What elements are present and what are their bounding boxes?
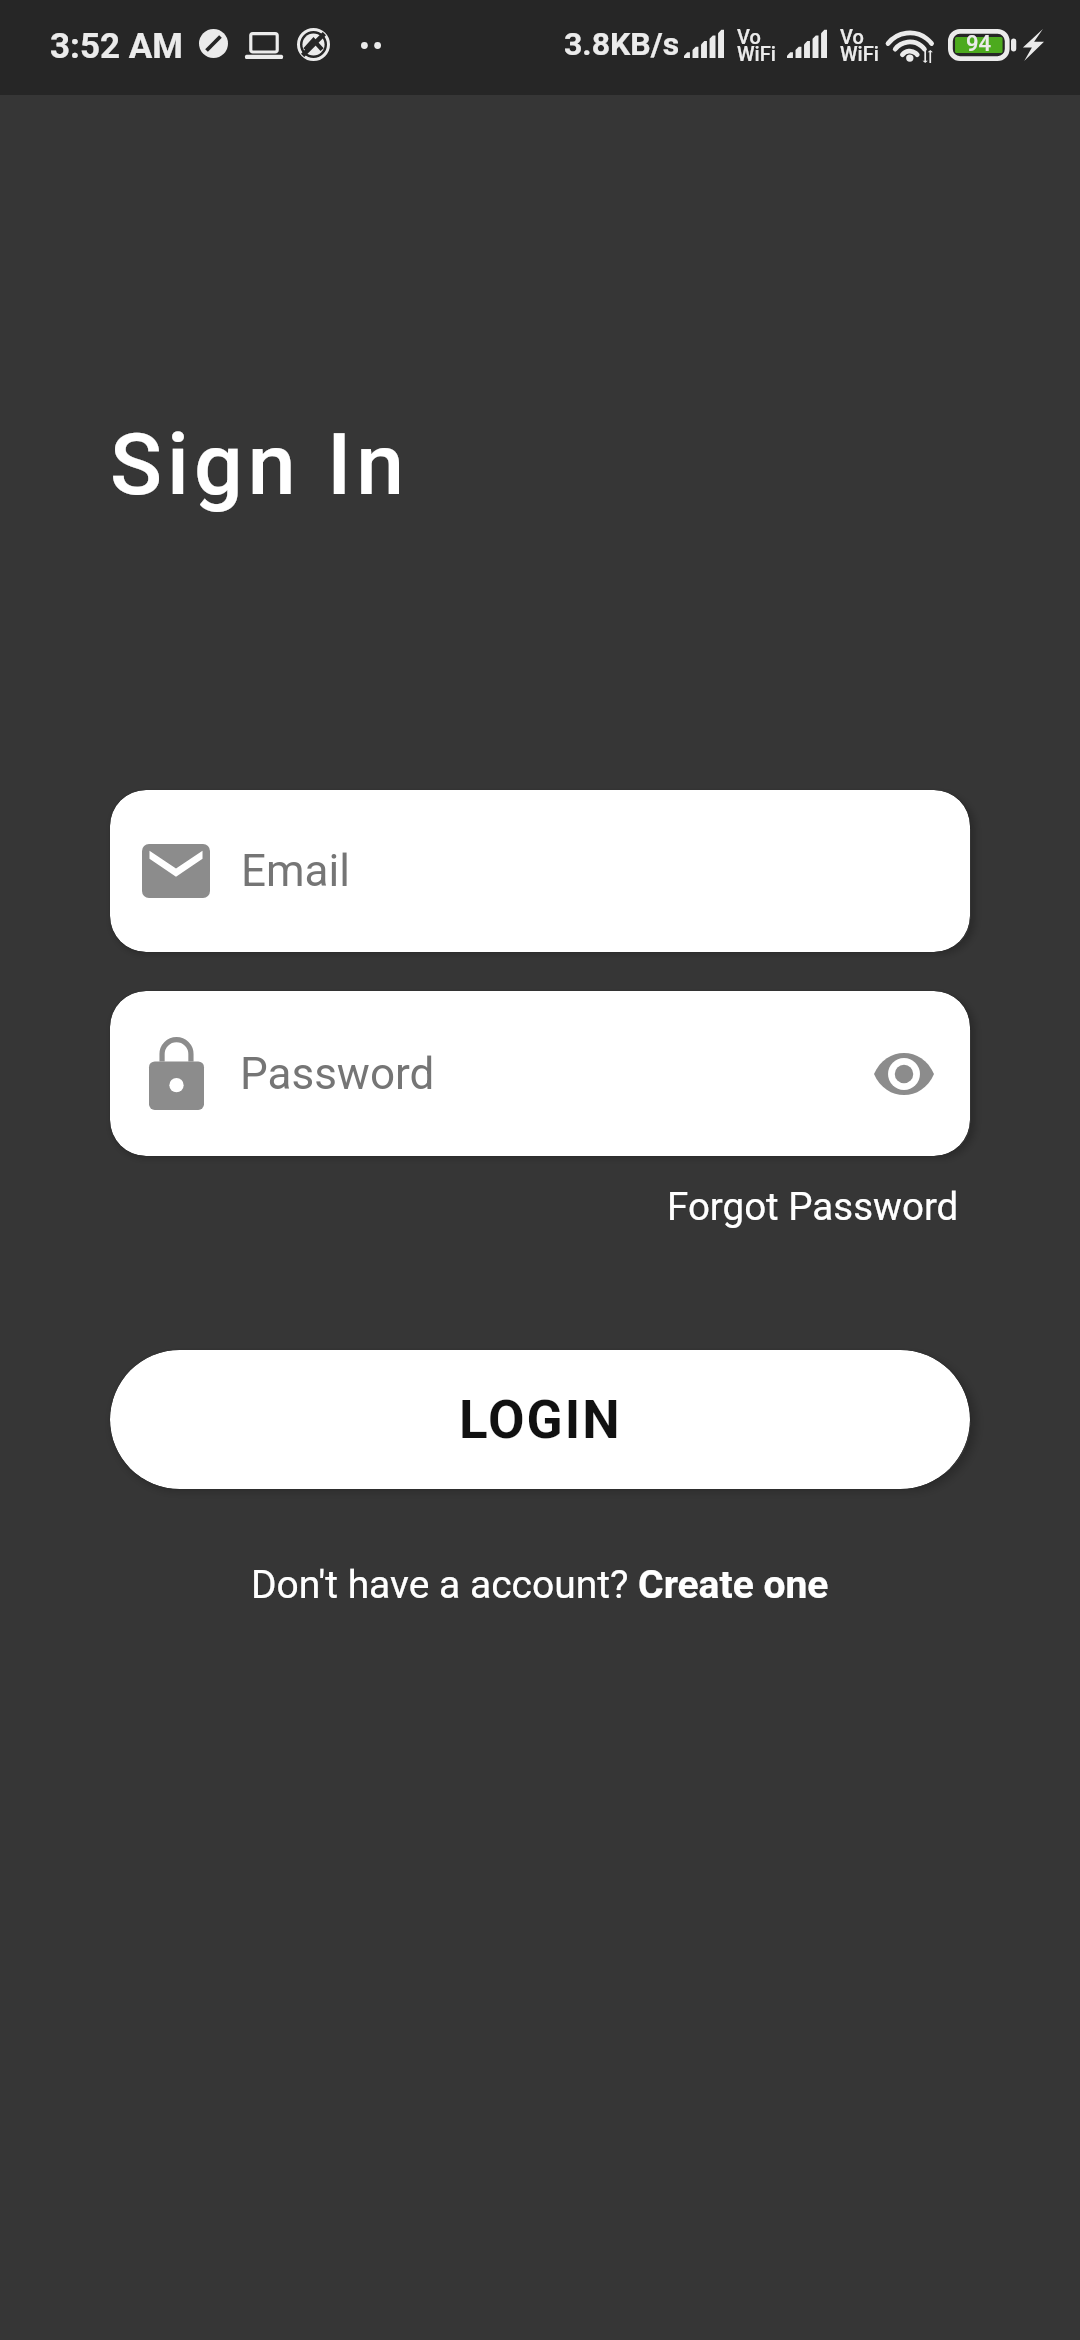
button[interactable]: Show password (874, 1032, 934, 1116)
button[interactable]: Don't have a account? Create one (251, 1562, 829, 1608)
staticText: WiFi (737, 42, 776, 65)
button[interactable]: Password (110, 991, 970, 1156)
staticText: 3:52 AM (50, 26, 183, 67)
staticText: WiFi (840, 42, 879, 65)
staticText: Vo (840, 25, 864, 48)
staticText: Password (240, 1048, 435, 1100)
button[interactable]: LOGIN (110, 1350, 970, 1489)
button[interactable]: Email (110, 790, 970, 952)
staticText: 94 (966, 31, 992, 57)
staticText: LOGIN (459, 1389, 622, 1451)
staticText: Email (241, 845, 350, 897)
staticText: Sign In (110, 414, 410, 515)
staticText: Vo (737, 25, 761, 48)
button[interactable]: Forgot Password (667, 1184, 959, 1229)
staticText: 3.8KB/s (564, 25, 680, 63)
